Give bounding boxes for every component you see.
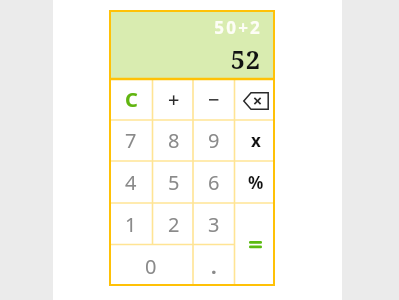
staticText: 8: [168, 127, 180, 154]
button[interactable]: 0: [109, 245, 193, 287]
button[interactable]: [235, 79, 276, 120]
staticText: −: [208, 86, 220, 113]
button[interactable]: 1: [109, 203, 153, 245]
staticText: 7: [125, 127, 137, 154]
staticText: 0: [145, 253, 157, 280]
button[interactable]: C: [109, 79, 153, 120]
staticText: 2: [168, 211, 180, 238]
button[interactable]: 7: [109, 120, 153, 161]
staticText: 5: [168, 169, 180, 196]
staticText: 6: [208, 169, 220, 196]
button[interactable]: 2: [153, 203, 194, 245]
staticText: 1: [125, 211, 137, 238]
staticText: x: [251, 129, 261, 152]
staticText: 4: [125, 169, 137, 196]
staticText: C: [125, 86, 138, 113]
button[interactable]: 9: [193, 120, 235, 161]
staticText: 9: [208, 127, 220, 154]
staticText: .: [211, 253, 217, 280]
button[interactable]: 4: [109, 161, 153, 203]
staticText: +: [168, 86, 180, 113]
button[interactable]: [235, 203, 276, 286]
button[interactable]: 3: [193, 203, 235, 245]
staticText: 3: [208, 211, 220, 238]
button[interactable]: x: [235, 120, 276, 161]
button[interactable]: 6: [193, 161, 235, 203]
staticText: %: [248, 171, 264, 194]
staticText: 50+2: [109, 16, 262, 39]
button[interactable]: .: [193, 245, 235, 287]
button[interactable]: %: [235, 161, 276, 203]
staticText: 52: [109, 42, 261, 76]
button[interactable]: 8: [153, 120, 194, 161]
button[interactable]: 5: [153, 161, 194, 203]
button[interactable]: −: [193, 79, 235, 120]
button[interactable]: +: [153, 79, 194, 120]
